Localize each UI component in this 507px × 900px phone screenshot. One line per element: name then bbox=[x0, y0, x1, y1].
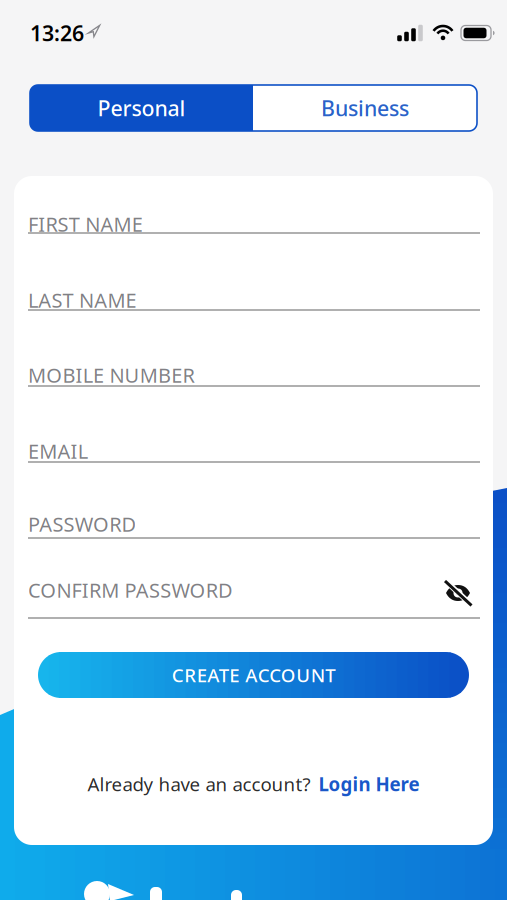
staticText: EMAIL bbox=[28, 438, 88, 464]
staticText: 13:26 bbox=[30, 19, 84, 47]
staticText: PASSWORD bbox=[28, 511, 136, 537]
staticText: Already have an account? bbox=[87, 772, 310, 796]
button[interactable]: Business bbox=[253, 85, 477, 131]
button[interactable]: Show password bbox=[441, 578, 475, 608]
staticText: Business bbox=[321, 94, 409, 122]
button[interactable]: Login Here bbox=[318, 772, 419, 796]
staticText: Personal bbox=[97, 94, 185, 122]
button[interactable]: Personal bbox=[30, 85, 253, 131]
staticText: CONFIRM PASSWORD bbox=[28, 577, 233, 603]
staticText: MOBILE NUMBER bbox=[28, 362, 194, 388]
staticText: Login Here bbox=[318, 772, 419, 796]
staticText: FIRST NAME bbox=[28, 211, 143, 237]
staticText: LAST NAME bbox=[28, 287, 137, 313]
button[interactable]: CREATE ACCOUNT bbox=[38, 652, 469, 698]
staticText: CREATE ACCOUNT bbox=[172, 663, 335, 687]
